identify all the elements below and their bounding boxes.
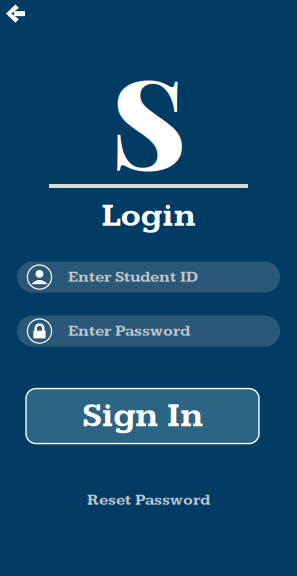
button[interactable]: Enter Student ID xyxy=(17,262,280,293)
staticText: Reset Password xyxy=(87,491,210,510)
staticText: Enter Password xyxy=(68,322,190,341)
button[interactable]: Reset Password xyxy=(87,491,210,510)
button[interactable]: Enter Password xyxy=(17,316,280,347)
staticText: Enter Student ID xyxy=(68,268,198,287)
staticText: Sign In xyxy=(82,395,203,437)
staticText: Login xyxy=(101,196,195,236)
button[interactable]: Back xyxy=(0,0,39,31)
button[interactable]: Sign In xyxy=(26,389,259,444)
staticText: S xyxy=(111,37,186,200)
